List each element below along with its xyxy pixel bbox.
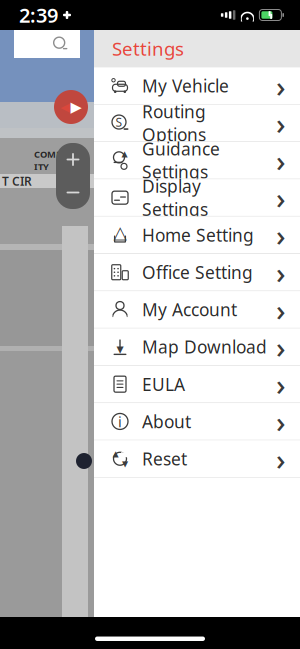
staticText: ▼ [116, 344, 123, 355]
button[interactable]: △ [94, 217, 300, 253]
button[interactable]: My Account [94, 291, 300, 328]
button[interactable]: ▲ [94, 142, 300, 179]
staticText: My Vehicle [142, 74, 229, 97]
button[interactable]: ▼ [94, 329, 300, 365]
button[interactable]: S [94, 105, 300, 141]
staticText: T CIR [2, 173, 32, 189]
staticText: Home Setting [142, 223, 254, 246]
staticText: Routing Options [142, 100, 206, 146]
staticText: › [276, 402, 286, 441]
staticText: △ [113, 223, 126, 242]
button[interactable]: ▲ [94, 440, 300, 477]
staticText: ▼ [122, 459, 128, 468]
button[interactable]: Zoom out [56, 176, 90, 209]
staticText: › [276, 66, 286, 105]
staticText: My Account [142, 298, 237, 321]
staticText: ▲ [121, 149, 127, 158]
button[interactable]: Zoom in [56, 143, 90, 176]
staticText: Map Download [142, 335, 267, 358]
button[interactable]: EULA [94, 366, 300, 402]
staticText: › [276, 290, 286, 329]
button[interactable]: Display Settings [94, 179, 300, 216]
staticText: About [142, 410, 191, 433]
staticText: 2:39 [19, 2, 58, 28]
button[interactable]: My Vehicle [94, 67, 300, 104]
staticText: COMMUNITY [34, 148, 83, 173]
staticText: › [276, 253, 286, 292]
staticText: › [276, 215, 286, 254]
staticText: ▲ [112, 449, 118, 458]
staticText: › [276, 365, 286, 404]
button[interactable]: i [94, 403, 300, 440]
staticText: ▶ [70, 99, 81, 115]
staticText: › [276, 178, 286, 217]
staticText: EULA [142, 373, 185, 396]
staticText: Display Settings [142, 175, 208, 221]
staticText: i [118, 412, 122, 431]
staticText: Settings [112, 36, 184, 61]
staticText: › [276, 104, 286, 143]
button[interactable]: Office Setting [94, 254, 300, 290]
staticText: S [115, 114, 122, 130]
staticText: › [276, 141, 286, 180]
button[interactable]: Search [14, 30, 80, 58]
staticText: Office Setting [142, 261, 253, 284]
staticText: › [276, 327, 286, 366]
staticText: ◀ [60, 100, 69, 114]
staticText: Reset [142, 447, 187, 470]
staticText: Guidance Settings [142, 137, 220, 183]
staticText: › [276, 439, 286, 478]
